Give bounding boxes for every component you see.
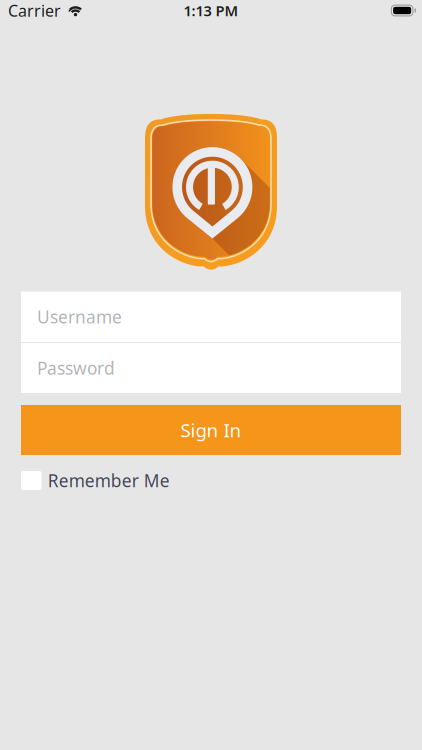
button[interactable]: Remember Me (21, 469, 401, 492)
staticText: Password (37, 356, 115, 379)
staticText: Sign In (180, 418, 241, 442)
staticText: Remember Me (48, 469, 170, 492)
button[interactable]: Username (21, 291, 401, 342)
staticText: 1:13 PM (183, 1, 238, 20)
button[interactable]: Sign In (21, 405, 401, 455)
staticText: Carrier (8, 0, 61, 21)
button[interactable]: Password (21, 343, 401, 393)
staticText: Username (37, 305, 122, 328)
